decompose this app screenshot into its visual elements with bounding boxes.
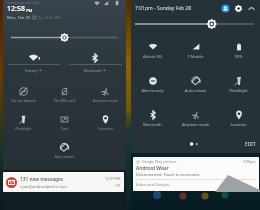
staticText: Android Wear xyxy=(136,165,169,172)
button[interactable]: User xyxy=(221,4,230,13)
staticText: Google Play services xyxy=(142,159,177,164)
button[interactable]: Airplane mode xyxy=(174,102,217,136)
staticText: Inbox and Google+ xyxy=(136,182,170,187)
button[interactable]: 99% xyxy=(217,34,260,68)
button[interactable]: EDIT xyxy=(245,141,256,147)
staticText: Location xyxy=(217,122,260,127)
staticText: 7:00pm xyxy=(243,159,256,164)
staticText: Auto-rotate xyxy=(174,88,217,93)
button[interactable]: Auto-rotate xyxy=(174,68,217,102)
button[interactable]: Location xyxy=(217,102,260,136)
staticText: Airlock 5G xyxy=(131,54,174,59)
button[interactable]: Collapse xyxy=(247,4,256,13)
staticText: T-Mobile xyxy=(174,54,217,59)
staticText: Disconnected. Touch to reconnect. xyxy=(136,172,201,177)
staticText: 99% xyxy=(217,54,260,59)
staticText: Location xyxy=(85,126,126,131)
staticText: 12:29 PM xyxy=(105,176,121,181)
button[interactable]: Auto-rotate xyxy=(44,135,85,163)
staticText: Tue 8:45 AM xyxy=(38,15,61,20)
button[interactable]: Gravity xyxy=(3,51,64,77)
button[interactable]: Location xyxy=(85,107,126,135)
staticText: Flashlight xyxy=(3,126,44,131)
staticText: PM xyxy=(26,8,33,13)
button[interactable]: 131 new messages xyxy=(3,172,124,192)
button[interactable]: Airplane mode xyxy=(85,79,126,107)
button[interactable]: Cast xyxy=(44,107,85,135)
staticText: 7:01pm - Sunday Feb 28 xyxy=(135,5,192,12)
staticText: Bluetooth xyxy=(131,122,174,127)
staticText: Airplane mode xyxy=(174,122,217,127)
button[interactable]: Airlock 5G xyxy=(131,34,174,68)
button[interactable]: Do not disturb xyxy=(3,79,44,107)
button[interactable]: No SIM card xyxy=(44,79,85,107)
button[interactable]: Bluetooth xyxy=(64,51,126,77)
button[interactable]: Brightness xyxy=(131,18,260,30)
staticText: Airplane mode xyxy=(85,98,126,103)
button[interactable]: Flashlight xyxy=(3,107,44,135)
staticText: Emergency calls only xyxy=(6,0,40,5)
staticText: Mon, Feb 29 xyxy=(7,15,31,20)
button[interactable]: Flashlight xyxy=(217,68,260,102)
staticText: EDIT xyxy=(245,141,256,147)
staticText: No SIM card xyxy=(44,98,85,103)
staticText: Do not disturb xyxy=(3,98,44,103)
staticText: ryan@androidpolice.com xyxy=(20,184,67,189)
staticText: Alarms only xyxy=(131,88,174,93)
staticText: Gravity xyxy=(25,68,38,73)
staticText: 131 xyxy=(115,184,121,188)
button[interactable]: Brightness xyxy=(3,32,126,43)
button[interactable]: Alarms only xyxy=(131,68,174,102)
staticText: Auto-rotate xyxy=(44,154,85,159)
button[interactable]: Google Play services xyxy=(133,157,259,191)
button[interactable]: Bluetooth xyxy=(131,102,174,136)
staticText: 12:58 xyxy=(7,4,25,14)
button[interactable]: T-Mobile xyxy=(174,34,217,68)
staticText: Flashlight xyxy=(217,88,260,93)
button[interactable]: Settings xyxy=(234,4,243,13)
staticText: Bluetooth xyxy=(84,68,102,73)
staticText: 131 new messages xyxy=(20,176,64,183)
staticText: Cast xyxy=(44,126,85,131)
